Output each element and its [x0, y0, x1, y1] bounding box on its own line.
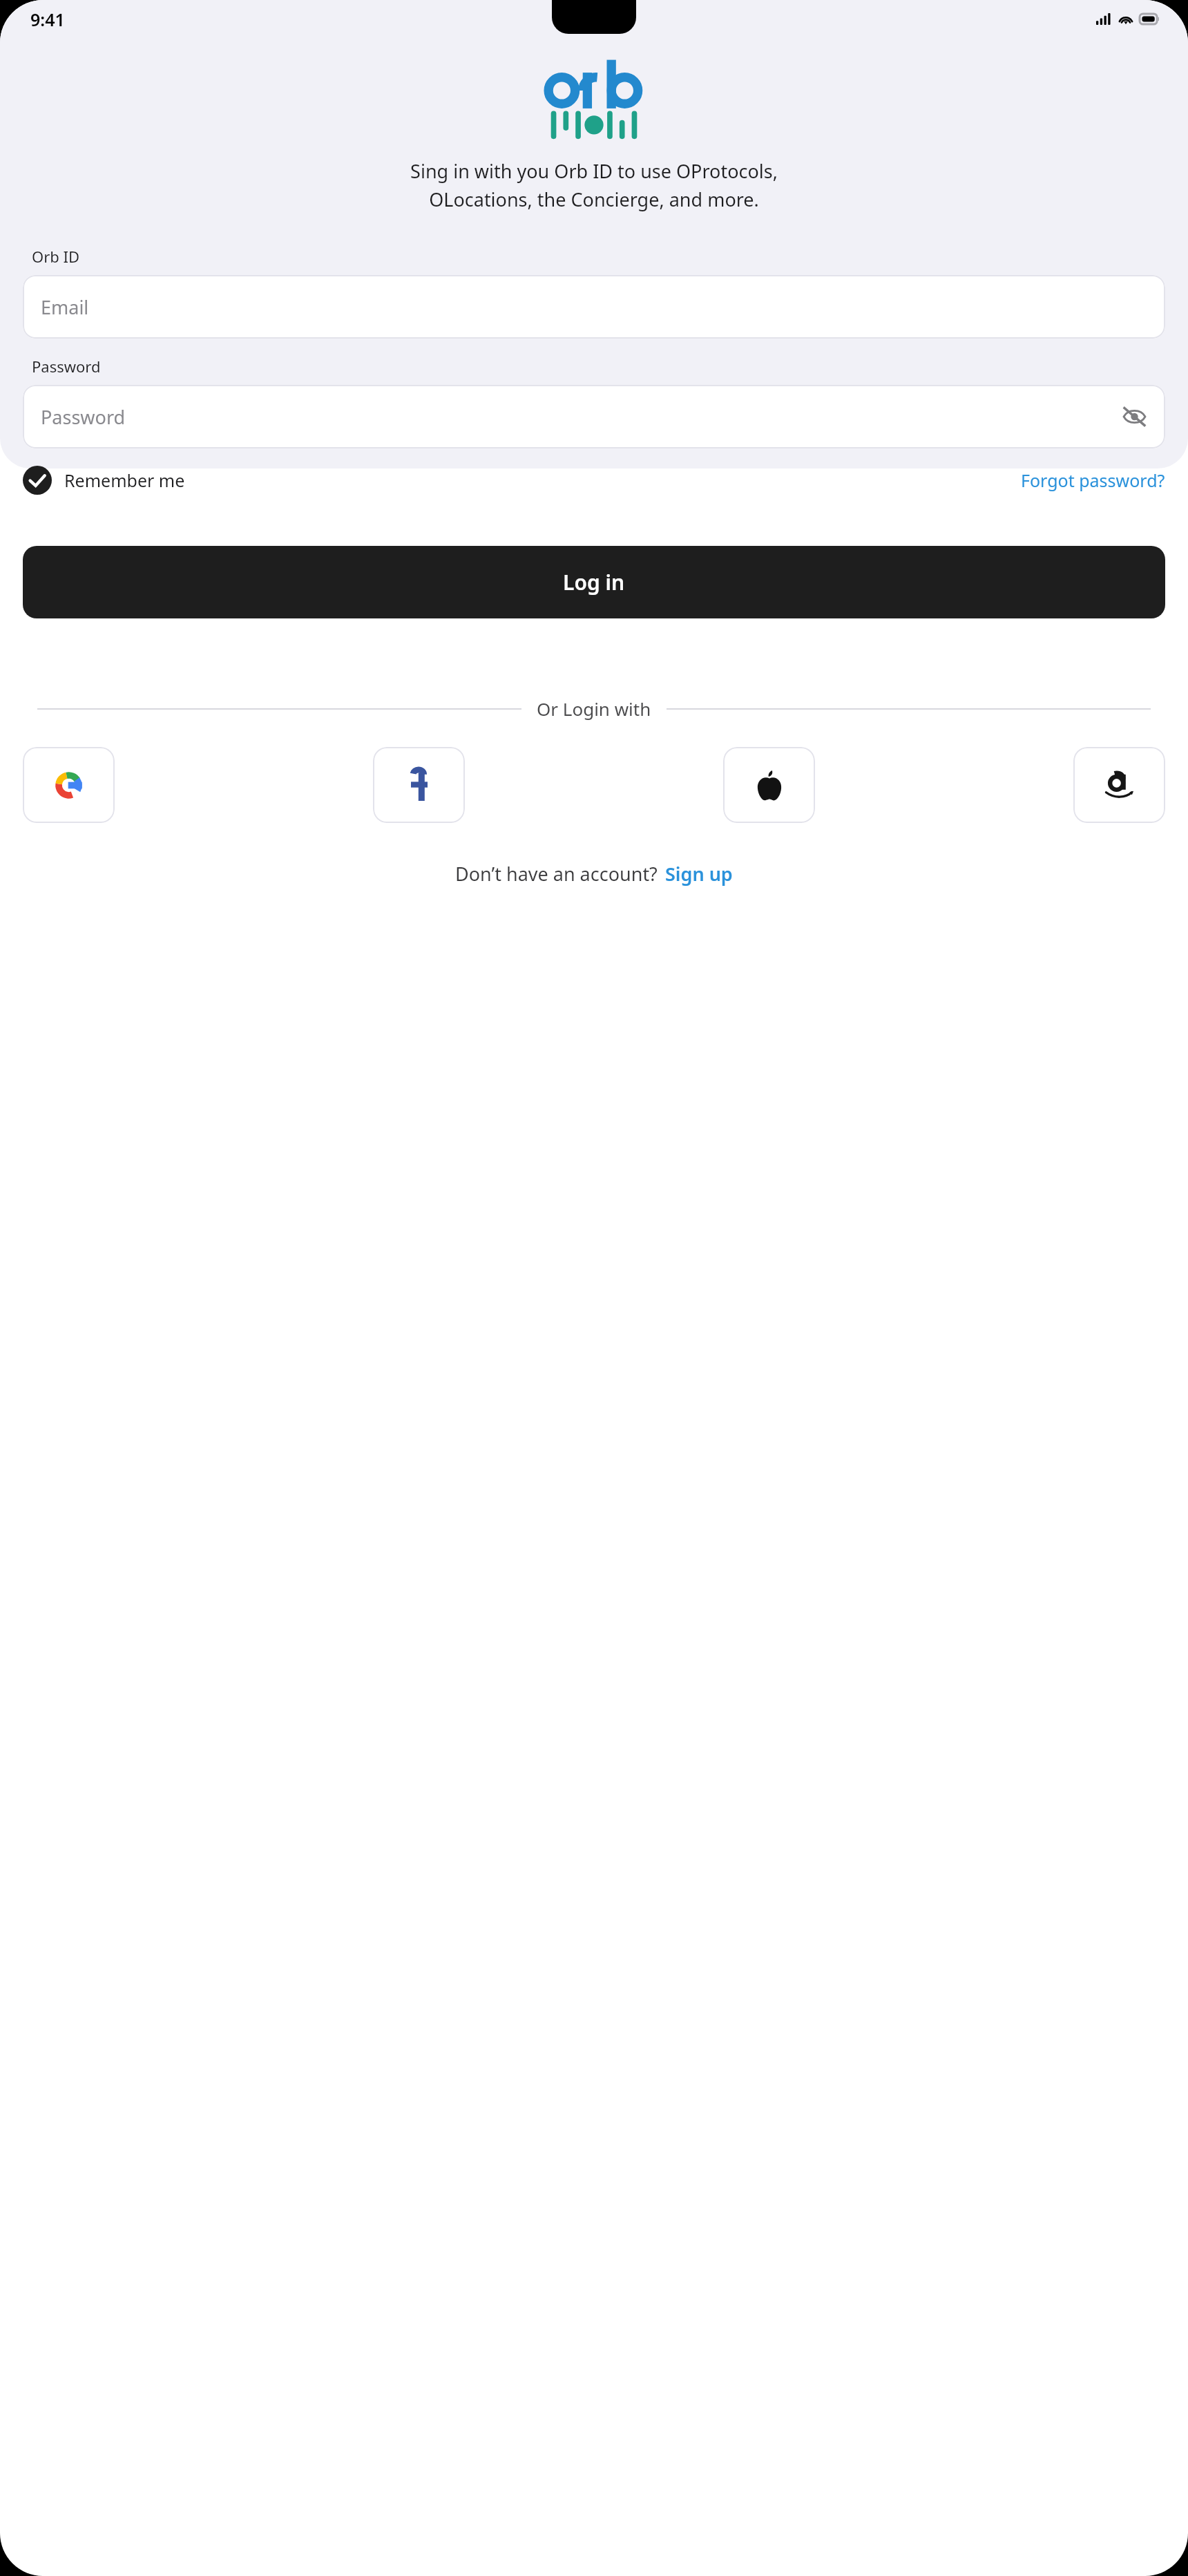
button[interactable]: Sign in with Google — [23, 747, 115, 823]
button[interactable]: Sign in with Amazon — [1073, 747, 1165, 823]
staticText: Password — [41, 404, 126, 430]
staticText: Orb ID — [32, 246, 80, 267]
staticText: Password — [32, 356, 101, 377]
button[interactable]: Sign in with Facebook — [373, 747, 465, 823]
staticText: Log in — [563, 568, 625, 596]
button[interactable]: Forgot password? — [1021, 468, 1165, 492]
button[interactable]: Remember me — [23, 466, 185, 495]
staticText: Sing in with you Orb ID to use OProtocol… — [410, 158, 778, 212]
staticText: Don’t have an account? — [455, 861, 658, 887]
button[interactable]: Show password — [1118, 401, 1150, 433]
button[interactable]: Sign in with Apple — [723, 747, 815, 823]
staticText: 9:41 — [30, 8, 65, 31]
button[interactable]: Email — [23, 275, 1165, 339]
staticText: Or Login with — [537, 697, 651, 721]
button[interactable]: Password — [23, 385, 1165, 448]
button[interactable]: Log in — [23, 546, 1165, 618]
button[interactable]: Sign up — [665, 861, 733, 887]
staticText: Remember me — [64, 468, 185, 492]
staticText: Sign up — [665, 861, 733, 887]
staticText: Forgot password? — [1021, 468, 1165, 492]
staticText: Email — [41, 294, 89, 320]
